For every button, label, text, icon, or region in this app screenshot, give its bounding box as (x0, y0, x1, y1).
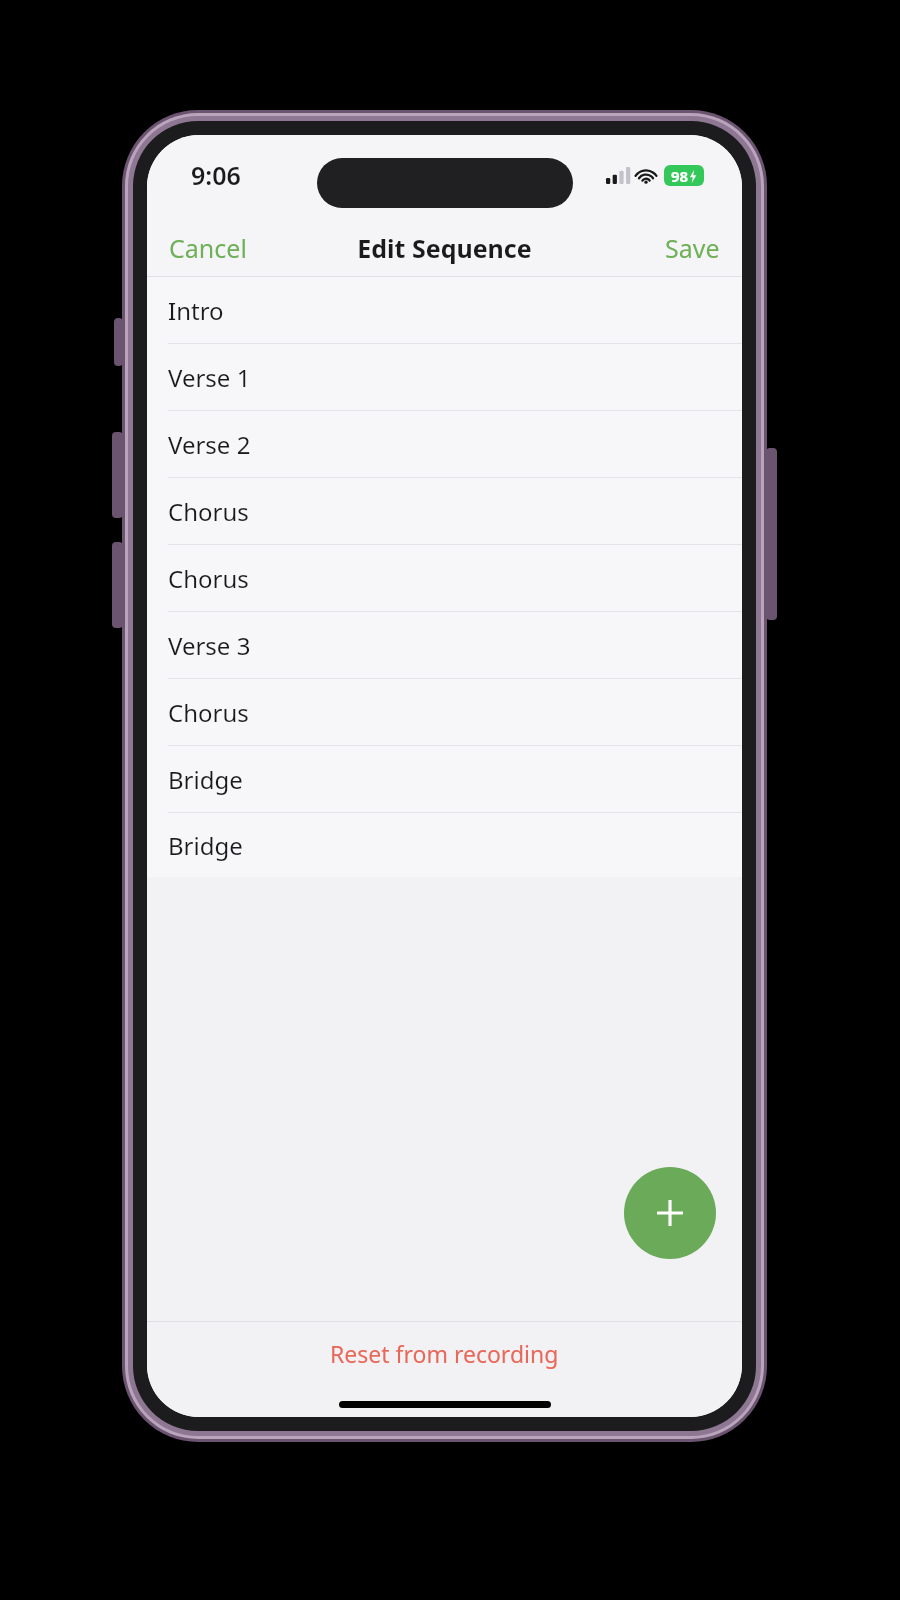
staticText: Chorus (168, 495, 249, 528)
staticText: Bridge (168, 829, 243, 862)
button[interactable]: Chorus (147, 478, 742, 545)
button[interactable]: Save (651, 223, 734, 273)
button[interactable]: Bridge (147, 746, 742, 813)
staticText: 9:06 (191, 158, 241, 192)
staticText: Bridge (168, 763, 243, 796)
button[interactable]: Verse 1 (147, 344, 742, 411)
staticText: Verse 1 (168, 361, 251, 394)
staticText: Verse 3 (168, 629, 251, 662)
button[interactable]: Verse 2 (147, 411, 742, 478)
staticText: Cancel (169, 231, 247, 265)
button[interactable]: Cancel (155, 223, 261, 273)
staticText: Intro (168, 294, 224, 327)
staticText: Reset from recording (330, 1338, 559, 1369)
staticText: Verse 2 (168, 428, 251, 461)
button[interactable]: Add section (624, 1167, 716, 1259)
staticText: 98 (671, 166, 689, 186)
staticText: Edit Sequence (147, 231, 742, 265)
button[interactable]: Reset from recording (147, 1321, 742, 1385)
staticText: Save (665, 231, 720, 265)
button[interactable]: Intro (147, 277, 742, 344)
button[interactable]: Bridge (147, 813, 742, 877)
staticText: Chorus (168, 696, 249, 729)
button[interactable]: Chorus (147, 545, 742, 612)
staticText: Chorus (168, 562, 249, 595)
button[interactable]: Chorus (147, 679, 742, 746)
button[interactable]: Verse 3 (147, 612, 742, 679)
